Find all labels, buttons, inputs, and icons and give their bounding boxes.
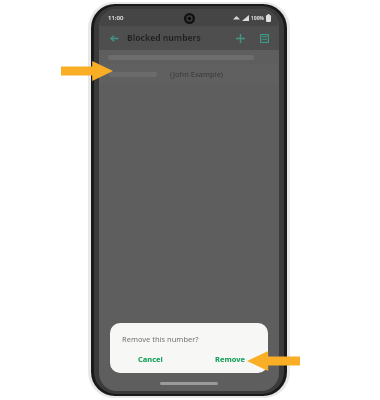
staticText: 100% — [251, 15, 264, 22]
button[interactable]: Cancel — [132, 352, 169, 366]
button[interactable]: Back — [107, 31, 121, 45]
staticText: Cancel — [138, 354, 163, 364]
staticText: Blocked numbers — [127, 32, 201, 44]
button[interactable]: More options — [257, 31, 271, 45]
staticText: Remove — [215, 354, 246, 364]
staticText: (John Example) — [170, 69, 224, 79]
staticText: 11:00 — [108, 14, 124, 22]
button[interactable]: Remove — [209, 352, 252, 366]
staticText: Remove this number? — [122, 334, 199, 344]
button[interactable]: (John Example) — [99, 64, 279, 84]
button[interactable]: Add number — [233, 31, 247, 45]
